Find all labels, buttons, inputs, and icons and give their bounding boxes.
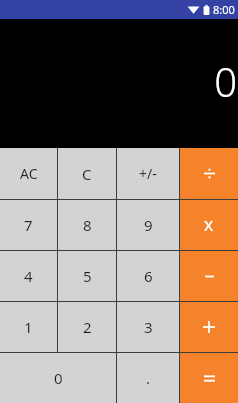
staticText: X: [204, 215, 214, 235]
button[interactable]: Divide: [180, 148, 238, 199]
button[interactable]: C: [58, 148, 116, 199]
staticText: 1: [24, 317, 33, 337]
button[interactable]: 6: [117, 251, 179, 301]
button[interactable]: 4: [0, 251, 57, 301]
button[interactable]: 9: [117, 200, 179, 250]
staticText: 7: [24, 215, 33, 235]
staticText: 5: [83, 266, 92, 286]
staticText: 6: [144, 266, 153, 286]
staticText: 4: [24, 266, 33, 286]
button[interactable]: AC: [0, 148, 57, 199]
button[interactable]: +/-: [117, 148, 179, 199]
staticText: 8: [83, 215, 92, 235]
button[interactable]: Plus: [180, 302, 238, 352]
button[interactable]: Minus: [180, 251, 238, 301]
button[interactable]: 7: [0, 200, 57, 250]
button[interactable]: 3: [117, 302, 179, 352]
button[interactable]: 0: [0, 353, 116, 403]
staticText: AC: [20, 164, 38, 183]
staticText: 0: [54, 368, 63, 388]
button[interactable]: Equals: [180, 353, 238, 403]
staticText: 0: [214, 54, 237, 108]
button[interactable]: 8: [58, 200, 116, 250]
staticText: .: [146, 368, 151, 388]
staticText: C: [82, 164, 92, 184]
button[interactable]: X: [180, 200, 238, 250]
button[interactable]: 5: [58, 251, 116, 301]
button[interactable]: 2: [58, 302, 116, 352]
button[interactable]: .: [117, 353, 179, 403]
staticText: 8:00: [213, 2, 235, 17]
staticText: 9: [144, 215, 153, 235]
staticText: 3: [144, 317, 153, 337]
staticText: +/-: [139, 164, 157, 183]
staticText: 2: [83, 317, 92, 337]
button[interactable]: 1: [0, 302, 57, 352]
